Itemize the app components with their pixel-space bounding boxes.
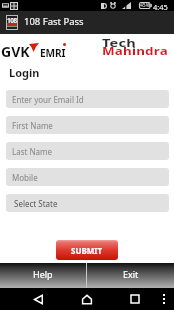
button[interactable]: Last Name xyxy=(6,142,169,160)
button[interactable]: Back xyxy=(30,291,46,307)
staticText: 108 Fast Pass xyxy=(24,15,84,28)
staticText: Last Name xyxy=(12,146,53,157)
staticText: Exit xyxy=(123,268,139,280)
staticText: Enter your Email Id xyxy=(12,94,84,105)
staticText: GVK xyxy=(1,42,30,61)
button[interactable]: SUBMIT xyxy=(56,240,118,260)
staticText: Select State xyxy=(14,198,58,209)
button[interactable]: Mobile xyxy=(6,168,169,186)
staticText: 108 xyxy=(7,16,17,25)
button[interactable]: More options xyxy=(156,291,172,307)
button[interactable]: Select State xyxy=(6,194,169,212)
button[interactable]: Help xyxy=(0,263,86,288)
button[interactable]: Home xyxy=(79,291,95,307)
staticText: Mahindra xyxy=(102,44,168,58)
button[interactable]: Enter your Email Id xyxy=(6,90,169,108)
staticText: SUBMIT xyxy=(71,245,103,256)
button[interactable]: First Name xyxy=(6,116,169,134)
staticText: 45% xyxy=(140,2,150,9)
staticText: Mobile xyxy=(12,172,38,183)
staticText: EMRI xyxy=(40,44,66,60)
button[interactable]: Exit xyxy=(87,263,174,288)
staticText: 4:45 xyxy=(153,2,168,12)
staticText: First Name xyxy=(12,120,53,131)
staticText: Login xyxy=(9,65,40,80)
staticText: Tech xyxy=(102,36,137,50)
staticText: Help xyxy=(33,268,53,280)
button[interactable]: Recent apps xyxy=(127,291,143,307)
